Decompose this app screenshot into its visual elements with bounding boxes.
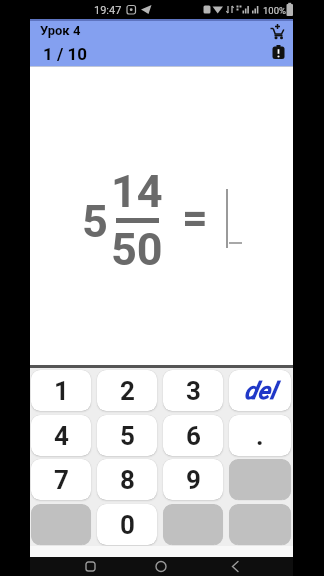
button[interactable] bbox=[229, 504, 291, 545]
button[interactable]: 2 bbox=[97, 370, 157, 411]
button[interactable] bbox=[78, 557, 104, 576]
button[interactable] bbox=[229, 459, 291, 500]
staticText: 2 bbox=[120, 376, 135, 406]
button[interactable] bbox=[31, 504, 91, 545]
staticText: 4 bbox=[54, 421, 69, 451]
staticText: 6 bbox=[186, 421, 201, 451]
button[interactable]: . bbox=[229, 415, 291, 456]
button[interactable]: 8 bbox=[97, 459, 157, 500]
staticText: . bbox=[256, 421, 264, 451]
button[interactable] bbox=[163, 504, 223, 545]
staticText: 9 bbox=[186, 465, 201, 495]
staticText: Урок 4 bbox=[40, 23, 81, 38]
button[interactable]: 9 bbox=[163, 459, 223, 500]
button[interactable]: 5 bbox=[97, 415, 157, 456]
button[interactable]: 3 bbox=[163, 370, 223, 411]
staticText: 1 bbox=[54, 376, 69, 406]
staticText: 8 bbox=[120, 465, 135, 495]
button[interactable]: 6 bbox=[163, 415, 223, 456]
staticText: 19:47 bbox=[94, 4, 122, 17]
button[interactable] bbox=[148, 557, 174, 576]
staticText: 14 bbox=[111, 165, 163, 218]
button[interactable] bbox=[272, 45, 286, 60]
staticText: 0 bbox=[120, 510, 135, 540]
staticText: del bbox=[244, 377, 276, 405]
staticText: 50 bbox=[111, 223, 163, 276]
staticText: 5 bbox=[120, 421, 135, 451]
button[interactable] bbox=[222, 557, 248, 576]
button[interactable]: del bbox=[229, 370, 291, 411]
button[interactable]: 7 bbox=[31, 459, 91, 500]
staticText: 7 bbox=[54, 465, 69, 495]
button[interactable]: 0 bbox=[97, 504, 157, 545]
staticText: 5 bbox=[82, 195, 108, 248]
staticText: 3 bbox=[186, 376, 201, 406]
button[interactable]: 1 bbox=[31, 370, 91, 411]
button[interactable]: 4 bbox=[31, 415, 91, 456]
staticText: 1 / 10 bbox=[43, 44, 88, 64]
staticText: 100% bbox=[263, 5, 286, 16]
staticText: = bbox=[182, 191, 208, 244]
button[interactable] bbox=[270, 24, 286, 39]
